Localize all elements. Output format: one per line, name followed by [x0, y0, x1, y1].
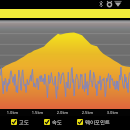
staticText: 고도: [19, 119, 29, 125]
staticText: 1.0km: [0, 110, 25, 115]
staticText: 2.0km: [50, 110, 75, 115]
staticText: 웨이포인트: [85, 119, 110, 125]
button[interactable]: 고도: [11, 119, 29, 125]
staticText: 속도: [52, 119, 62, 125]
staticText: 3.0km: [100, 110, 125, 115]
staticText: 2.5km: [75, 110, 100, 115]
button[interactable]: 웨이포인트: [77, 119, 110, 125]
button[interactable]: 속도: [44, 119, 62, 125]
staticText: 1.5km: [25, 110, 50, 115]
